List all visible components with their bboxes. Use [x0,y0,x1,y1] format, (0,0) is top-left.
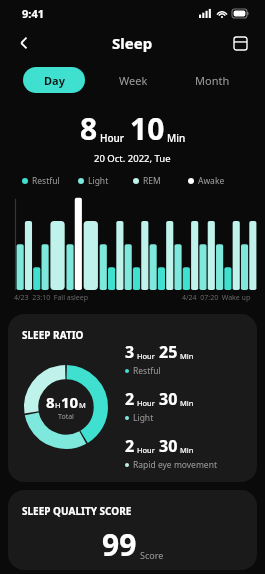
staticText: 10 [61,392,79,412]
staticText: Hour [137,398,155,408]
staticText: M [79,400,86,410]
staticText: Awake [198,175,225,187]
staticText: Min [180,351,194,361]
button[interactable]: Calendar [225,28,255,58]
staticText: Min [167,131,186,145]
staticText: Score [140,549,164,561]
staticText: 9:41 [22,6,44,21]
staticText: 8 [46,392,55,412]
staticText: 8 [80,108,98,149]
staticText: 4/24 07:20 Wake up [182,293,251,303]
button[interactable]: Month [181,67,243,93]
staticText: Month [195,73,230,88]
staticText: Light [133,412,154,424]
staticText: Hour [137,445,155,455]
staticText: H [55,400,61,410]
button[interactable]: Back [8,27,40,59]
button[interactable]: SLEEP QUALITY SCORE [8,490,257,570]
staticText: Total [58,412,74,422]
staticText: Hour [100,131,125,145]
staticText: Hour [137,351,155,361]
staticText: 99 [102,524,137,565]
staticText: Restful [32,175,60,187]
staticText: 25 [159,341,178,363]
staticText: REM [143,175,161,187]
staticText: Light [88,175,109,187]
staticText: 20 Oct. 2022, Tue [94,152,171,165]
staticText: Day [44,73,65,88]
staticText: SLEEP RATIO [22,328,84,342]
staticText: 2 [125,388,135,410]
button[interactable]: Day [23,67,85,93]
staticText: Sleep [112,33,153,53]
button[interactable]: SLEEP RATIO [8,314,257,482]
staticText: 30 [159,435,178,457]
staticText: Week [119,73,148,88]
button[interactable]: Week [102,67,164,93]
staticText: Restful [133,365,161,377]
staticText: Min [180,398,194,408]
staticText: Rapid eye movement [133,459,217,471]
staticText: Min [180,445,194,455]
staticText: 3 [125,341,135,363]
staticText: 4/23 23:10 Fall asleep [14,293,89,303]
staticText: 2 [125,435,135,457]
staticText: 30 [159,388,178,410]
staticText: 10 [130,108,165,149]
staticText: SLEEP QUALITY SCORE [22,504,132,518]
